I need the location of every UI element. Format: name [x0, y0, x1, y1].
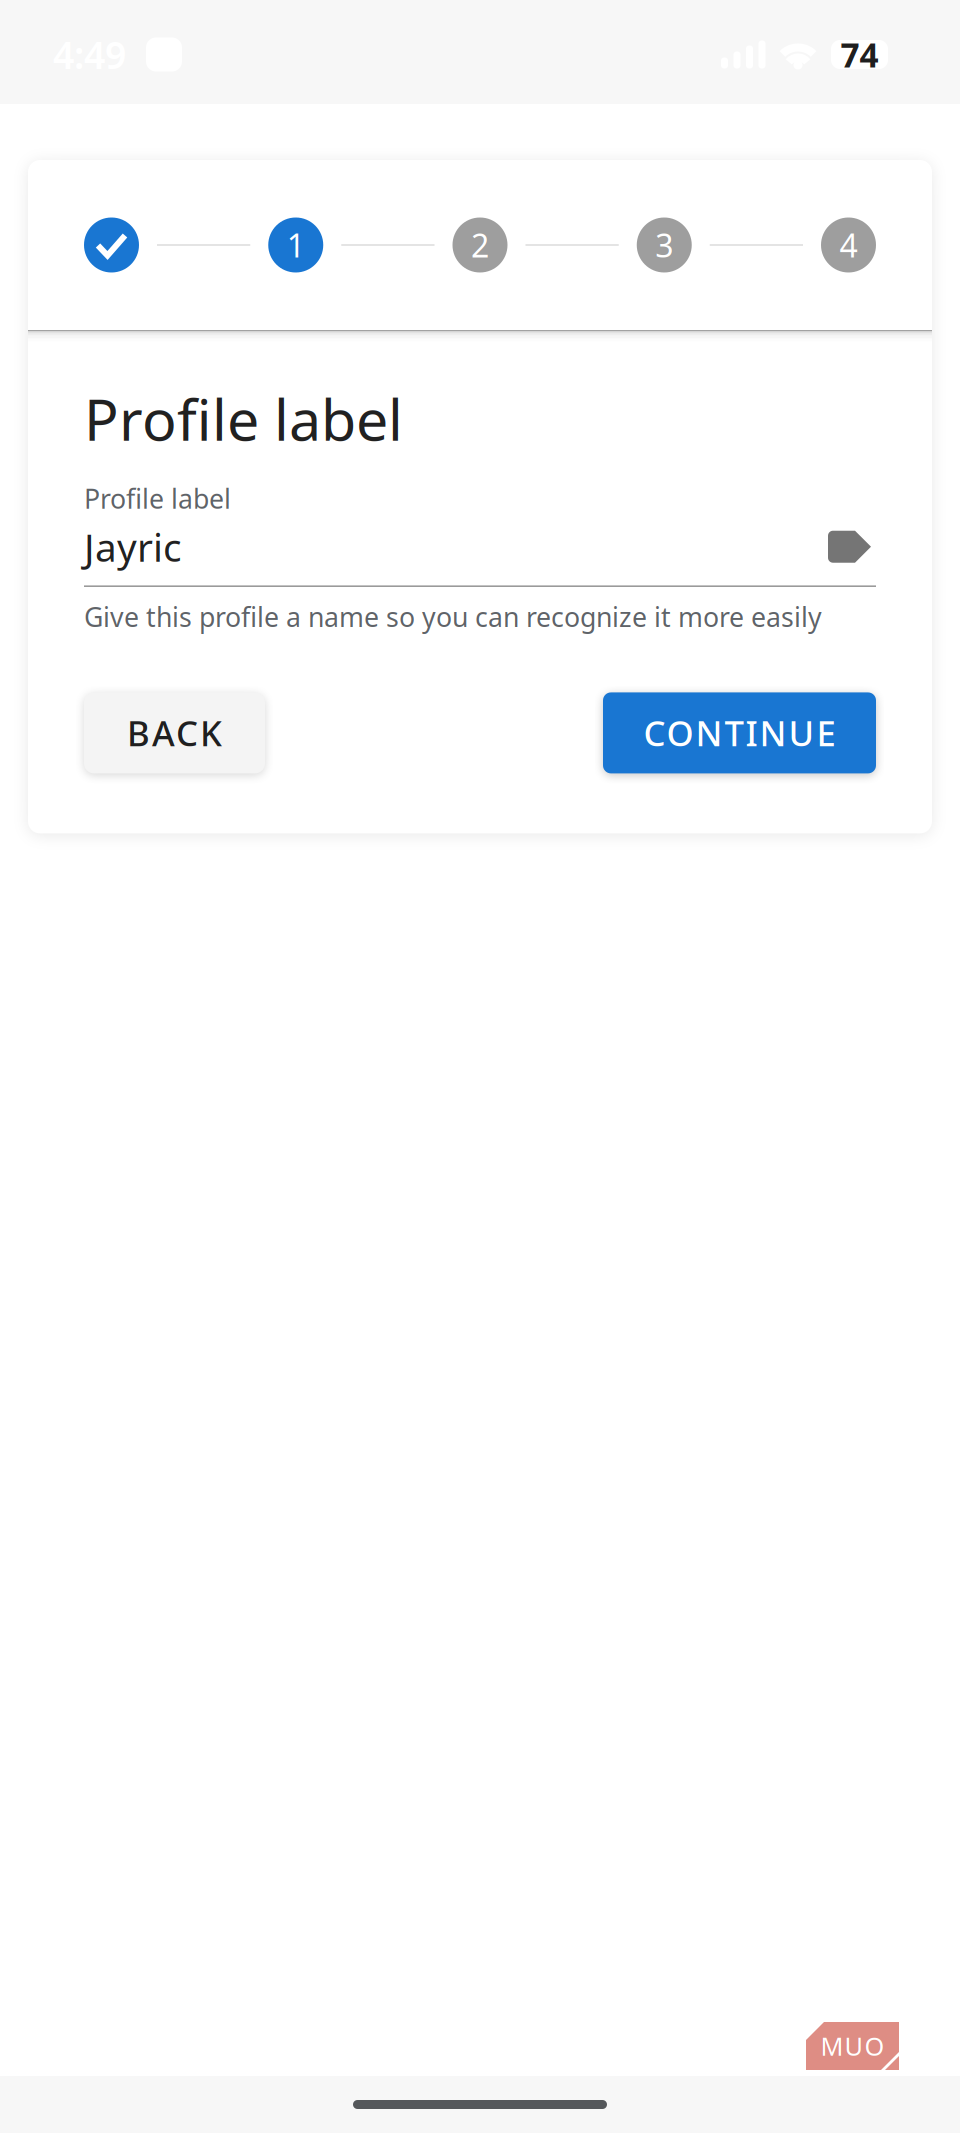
staticText: CONTINUE	[643, 710, 835, 756]
button[interactable]: Step 4	[821, 217, 876, 272]
staticText: Profile label	[84, 380, 403, 457]
staticText: 3	[655, 224, 673, 266]
button[interactable]: BACK	[84, 692, 265, 773]
button[interactable]: CONTINUE	[603, 692, 876, 773]
staticText: MUO	[820, 2029, 884, 2063]
staticText: Profile label	[84, 481, 231, 516]
staticText: 4:49	[53, 30, 126, 79]
staticText: 2	[471, 224, 489, 266]
staticText: Give this profile a name so you can reco…	[84, 599, 822, 634]
button[interactable]: Profile label	[84, 481, 876, 587]
button[interactable]: Step completed	[84, 217, 139, 272]
staticText: Jayric	[84, 521, 182, 572]
button[interactable]: Step 3	[637, 217, 692, 272]
button[interactable]: Step 2	[452, 217, 507, 272]
staticText: 1	[287, 224, 305, 266]
staticText: BACK	[127, 710, 222, 756]
button[interactable]: Step 1, current	[268, 217, 323, 272]
staticText: 4	[839, 224, 857, 266]
staticText: 74	[840, 32, 878, 77]
